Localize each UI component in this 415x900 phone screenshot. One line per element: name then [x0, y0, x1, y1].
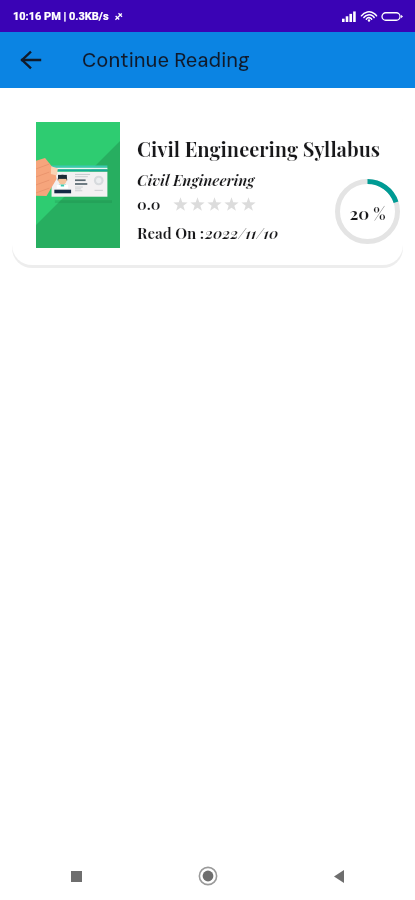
staticText: Civil Engineering Syllabus [137, 135, 381, 162]
button[interactable]: 20 % [12, 102, 403, 265]
staticText: Read On : [137, 223, 205, 243]
button[interactable]: Home [188, 856, 228, 896]
button[interactable]: Recent apps [56, 856, 96, 896]
button[interactable]: Back [319, 856, 359, 896]
button[interactable]: Back [7, 37, 53, 83]
staticText: 20 % [349, 202, 386, 225]
staticText: Continue Reading [82, 47, 250, 73]
staticText: 10:16 PM | 0.3KB/s [13, 10, 109, 23]
staticText: 2022/11/10 [205, 223, 279, 243]
staticText: 0.0 [137, 194, 161, 214]
staticText: Civil Engineering [137, 170, 255, 190]
